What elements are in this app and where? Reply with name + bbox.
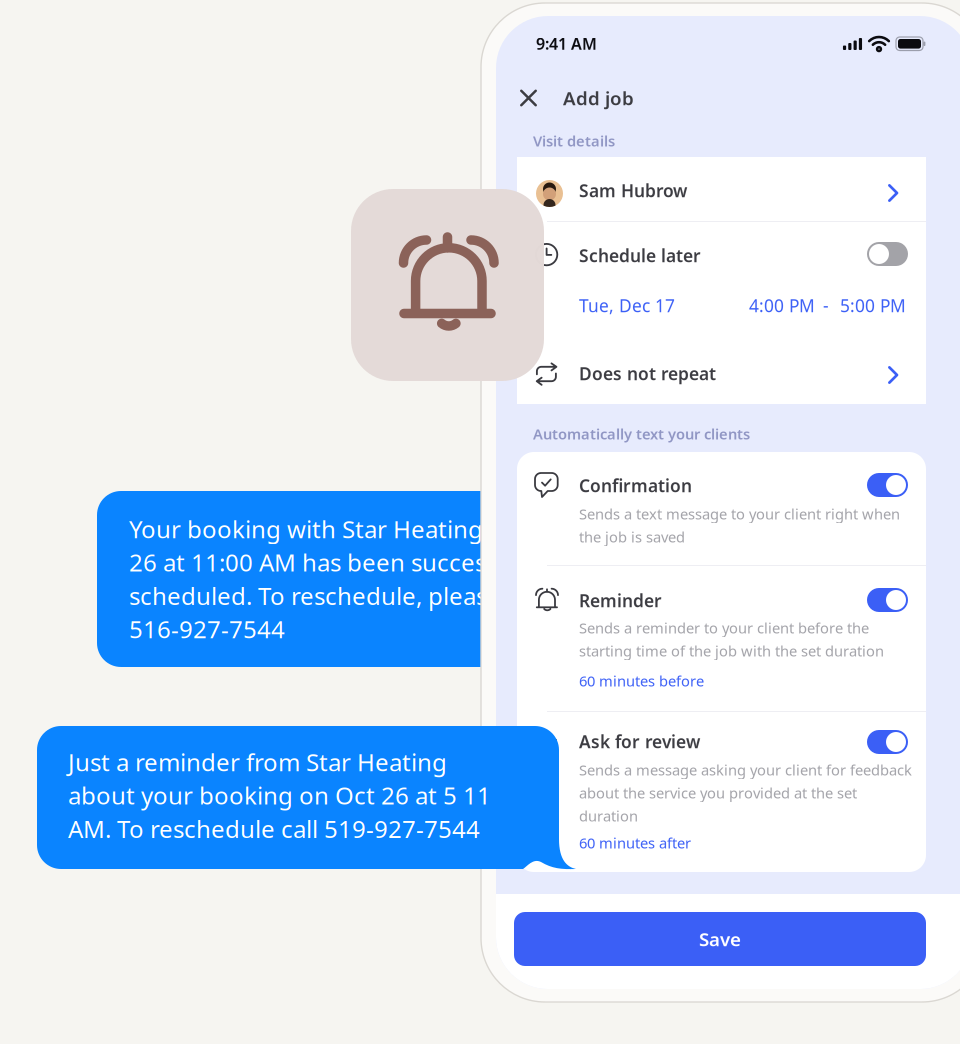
button[interactable]: 60 minutes after xyxy=(579,833,691,852)
staticText: 5:00 PM xyxy=(840,294,906,317)
staticText: Sends a text message to your client righ… xyxy=(579,504,900,546)
staticText: Your booking with Star Heating on Oct 26… xyxy=(129,513,565,645)
staticText: Visit details xyxy=(533,131,615,150)
staticText: 60 minutes before xyxy=(579,671,704,690)
staticText: Save xyxy=(699,927,741,951)
button[interactable]: Does not repeat xyxy=(517,344,926,404)
staticText: Tue, Dec 17 xyxy=(579,294,675,317)
staticText: Automatically text your clients xyxy=(533,424,750,443)
button[interactable] xyxy=(867,242,908,266)
staticText: Reminder xyxy=(579,589,662,612)
staticText: Sends a reminder to your client before t… xyxy=(579,618,884,660)
button[interactable] xyxy=(867,730,908,754)
button[interactable]: Add job xyxy=(520,85,634,111)
staticText: 9:41 AM xyxy=(536,33,597,54)
button[interactable] xyxy=(867,588,908,612)
staticText: Sam Hubrow xyxy=(579,179,687,202)
staticText: 4:00 PM xyxy=(749,294,815,317)
button[interactable] xyxy=(867,473,908,497)
button[interactable]: Sam Hubrow xyxy=(517,157,926,221)
staticText: Sends a message asking your client for f… xyxy=(579,760,912,825)
staticText: 60 minutes after xyxy=(579,833,691,852)
button[interactable]: 60 minutes before xyxy=(579,671,704,690)
staticText: Add job xyxy=(563,86,634,110)
staticText: - xyxy=(823,294,829,317)
staticText: Just a reminder from Star Heating about … xyxy=(68,746,491,845)
staticText: Does not repeat xyxy=(579,362,716,385)
button[interactable]: Save xyxy=(514,912,926,966)
staticText: Confirmation xyxy=(579,474,692,497)
staticText: Ask for review xyxy=(579,730,700,753)
staticText: Schedule later xyxy=(579,244,701,267)
